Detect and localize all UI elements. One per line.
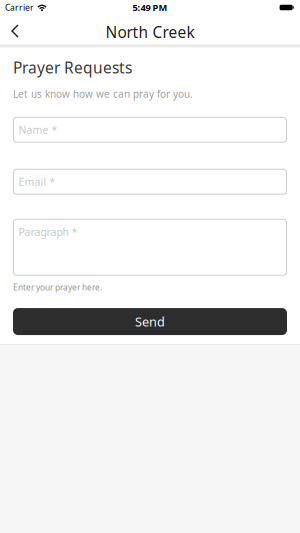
staticText: 5:49 PM (132, 1, 167, 14)
button[interactable]: Send (13, 308, 287, 335)
button[interactable]: Email (13, 169, 287, 195)
staticText: Enter your prayer here. (13, 282, 102, 293)
button[interactable]: Name (13, 117, 287, 143)
button[interactable]: Paragraph (13, 219, 287, 276)
staticText: Carrier (5, 2, 34, 13)
staticText: North Creek (105, 21, 194, 42)
staticText: Paragraph * (18, 225, 77, 239)
staticText: Let us know how we can pray for you. (13, 87, 193, 101)
staticText: Email * (18, 175, 55, 189)
staticText: Prayer Requests (13, 57, 132, 78)
staticText: Name * (18, 123, 57, 137)
staticText: Send (135, 313, 165, 330)
button[interactable]: Back (0, 20, 33, 44)
